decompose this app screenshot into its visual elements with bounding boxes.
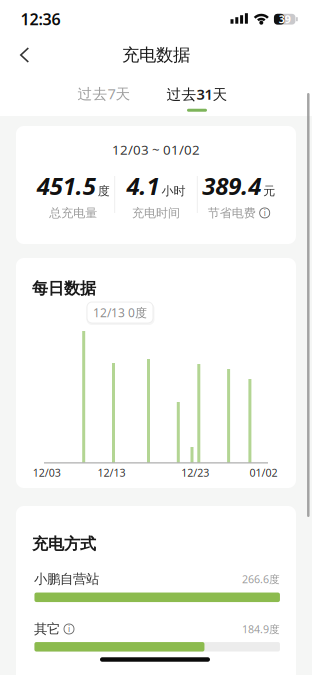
- staticText: 每日数据: [32, 279, 96, 298]
- staticText: 389.4: [202, 170, 261, 202]
- button[interactable]: 过去7天: [69, 80, 139, 106]
- staticText: 01/02: [250, 465, 278, 480]
- staticText: 充电方式: [32, 534, 96, 554]
- button[interactable]: i: [64, 624, 74, 634]
- button[interactable]: i: [260, 208, 270, 218]
- staticText: 过去7天: [77, 84, 130, 103]
- staticText: 度: [98, 184, 110, 198]
- staticText: 充电数据: [122, 44, 190, 66]
- staticText: 12/13: [98, 465, 126, 480]
- staticText: i: [68, 624, 70, 634]
- staticText: 451.5: [37, 170, 96, 202]
- staticText: 充电时间: [132, 206, 180, 220]
- staticText: 12/03: [33, 465, 61, 480]
- staticText: 4.1: [126, 170, 159, 202]
- staticText: 小鹏自营站: [34, 571, 99, 587]
- button[interactable]: [18, 46, 31, 64]
- staticText: 总充电量: [49, 206, 97, 220]
- staticText: 39: [279, 12, 291, 26]
- staticText: 184.9度: [242, 622, 280, 636]
- staticText: 266.6度: [242, 572, 280, 586]
- staticText: 其它: [34, 621, 60, 637]
- staticText: 节省电费: [208, 206, 256, 220]
- staticText: 12:36: [20, 8, 60, 30]
- staticText: 元: [263, 184, 275, 198]
- staticText: 小时: [161, 184, 185, 198]
- staticText: 过去31天: [166, 84, 227, 104]
- staticText: 12/03 ~ 01/02: [112, 141, 200, 158]
- staticText: 12/13 0度: [93, 304, 147, 320]
- button[interactable]: 过去31天: [166, 84, 227, 112]
- staticText: i: [264, 208, 266, 218]
- staticText: 12/23: [181, 465, 209, 480]
